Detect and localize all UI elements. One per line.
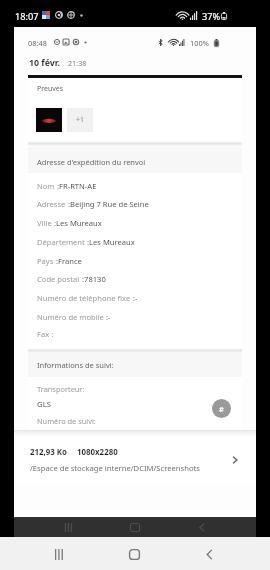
staticText: 100% <box>190 38 209 48</box>
staticText: Département <box>37 237 87 247</box>
staticText: :78130 <box>82 274 106 284</box>
button[interactable]: Home <box>119 539 150 570</box>
staticText: Ville <box>37 218 54 228</box>
staticText: :- <box>133 293 138 303</box>
button[interactable]: Copier le numéro <box>212 399 231 418</box>
staticText: 37% <box>202 10 221 23</box>
staticText: :Les Mureaux <box>54 218 102 228</box>
staticText: 21:38 <box>68 58 87 68</box>
staticText: GLS <box>37 399 52 410</box>
staticText: Numéro de suivi: <box>37 416 96 426</box>
staticText: 18:07 <box>15 10 39 23</box>
staticText: :Beijing 7 Rue de Seine <box>68 199 149 209</box>
staticText: :Les Mureaux <box>87 237 135 247</box>
staticText: /Espace de stockage interne/DCIM/Screens… <box>30 463 200 473</box>
staticText: Nom <box>37 181 57 191</box>
staticText: Pays <box>37 256 56 266</box>
staticText: Informations de suivi: <box>37 360 114 370</box>
staticText: Numéro de téléphone fixe <box>37 293 133 303</box>
staticText: Numéro de mobile <box>37 312 106 322</box>
button[interactable]: Back <box>194 539 225 570</box>
staticText: +1 <box>76 115 85 125</box>
staticText: Transporteur: <box>37 384 85 394</box>
staticText: Code postal <box>37 274 82 284</box>
button[interactable]: Recents <box>43 539 74 570</box>
staticText: Fax : <box>37 329 54 339</box>
staticText: # <box>219 404 224 414</box>
staticText: 10 févr. <box>29 57 60 69</box>
staticText: :- <box>106 312 111 322</box>
staticText: 212,93 Ko <box>30 447 68 458</box>
staticText: Adresse <box>37 199 68 209</box>
staticText: :France <box>56 256 82 266</box>
staticText: Adresse d'expédition du renvoi <box>37 157 146 167</box>
staticText: 08:48 <box>28 38 47 48</box>
staticText: 1080x2280 <box>77 447 118 458</box>
staticText: :FR-RTN-AE <box>57 181 97 191</box>
staticText: Preuves <box>37 84 64 94</box>
button[interactable]: 212,93 Ko <box>14 436 256 483</box>
